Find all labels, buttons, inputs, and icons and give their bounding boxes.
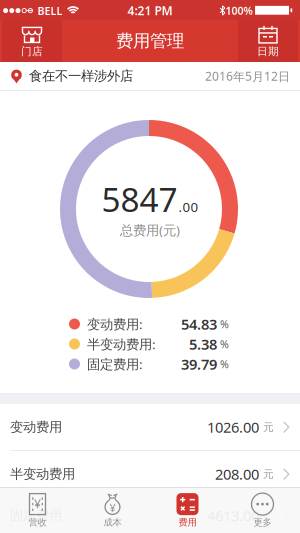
- button[interactable]: 日期: [238, 20, 298, 62]
- staticText: 100%: [225, 3, 252, 18]
- staticText: 元: [263, 421, 274, 434]
- button[interactable]: 食在不一样涉外店: [0, 62, 300, 90]
- staticText: 更多: [253, 517, 271, 528]
- staticText: 食在不一样涉外店: [29, 68, 133, 84]
- staticText: 营收: [28, 517, 46, 528]
- staticText: 总费用(元): [120, 221, 180, 239]
- staticText: 半变动费用:: [87, 335, 156, 353]
- staticText: 变动费用: [10, 419, 62, 435]
- staticText: 元: [263, 468, 274, 481]
- button[interactable]: 费用: [150, 488, 225, 533]
- staticText: 2016年5月12日: [205, 68, 290, 84]
- staticText: 208.00: [215, 464, 259, 484]
- staticText: %: [220, 317, 229, 331]
- staticText: 门店: [21, 45, 43, 58]
- button[interactable]: 固定费用: [0, 492, 300, 533]
- staticText: ¥: [109, 500, 115, 515]
- button[interactable]: 更多: [225, 488, 300, 533]
- staticText: 元: [263, 509, 274, 522]
- button[interactable]: 门店: [2, 20, 62, 62]
- staticText: 半变动费用: [10, 466, 75, 482]
- button[interactable]: ¥: [75, 488, 150, 533]
- button[interactable]: 半变动费用: [0, 451, 300, 497]
- staticText: 费用管理: [116, 30, 184, 52]
- staticText: 54.83: [181, 314, 217, 334]
- staticText: .00: [178, 198, 198, 216]
- staticText: 费用: [178, 517, 196, 528]
- staticText: 1026.00: [207, 417, 259, 437]
- staticText: 5847: [101, 177, 177, 221]
- staticText: 39.79: [181, 354, 217, 374]
- staticText: 成本: [103, 517, 121, 528]
- staticText: %: [220, 357, 229, 371]
- button[interactable]: 变动费用: [0, 404, 300, 450]
- staticText: 5.38: [189, 334, 217, 354]
- staticText: 日期: [257, 45, 279, 58]
- staticText: BELL: [37, 4, 62, 18]
- button[interactable]: ¥: [0, 488, 75, 533]
- staticText: 4:21 PM: [127, 2, 172, 18]
- staticText: 固定费用:: [87, 355, 143, 373]
- staticText: 4613.00: [207, 506, 259, 525]
- staticText: 固定费用: [10, 507, 62, 524]
- staticText: %: [220, 337, 229, 351]
- staticText: ¥: [34, 496, 41, 512]
- staticText: 变动费用:: [87, 315, 143, 333]
